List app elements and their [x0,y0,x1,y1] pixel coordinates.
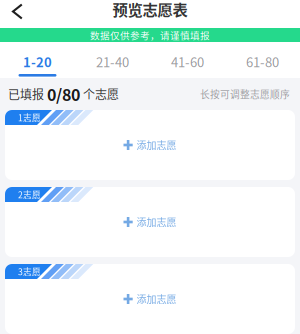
staticText: 数据仅供参考，请谨慎填报 [90,28,210,42]
button[interactable]: Back [0,0,30,27]
button[interactable]: 添加志愿 [111,131,188,159]
staticText: 2志愿 [18,188,41,201]
staticText: 61-80 [246,52,279,71]
staticText: 已填报 [8,85,47,103]
button[interactable]: 添加志愿 [111,285,188,313]
staticText: 0/80 [47,82,80,106]
staticText: 长按可调整志愿顺序 [200,87,290,101]
staticText: 41-60 [171,52,204,71]
staticText: 预览志愿表 [112,0,187,20]
staticText: 添加志愿 [136,292,176,306]
button[interactable]: 41-60 [150,42,225,78]
staticText: 3志愿 [18,265,41,278]
button[interactable]: 添加志愿 [111,208,188,236]
staticText: 1-20 [23,52,52,71]
staticText: 个志愿 [80,85,119,103]
staticText: 添加志愿 [136,215,176,229]
staticText: 1志愿 [18,111,41,124]
staticText: 21-40 [96,52,129,71]
staticText: 添加志愿 [136,138,176,152]
button[interactable]: 61-80 [225,42,300,78]
button[interactable]: 21-40 [75,42,150,78]
button[interactable]: 1-20 [0,42,75,78]
